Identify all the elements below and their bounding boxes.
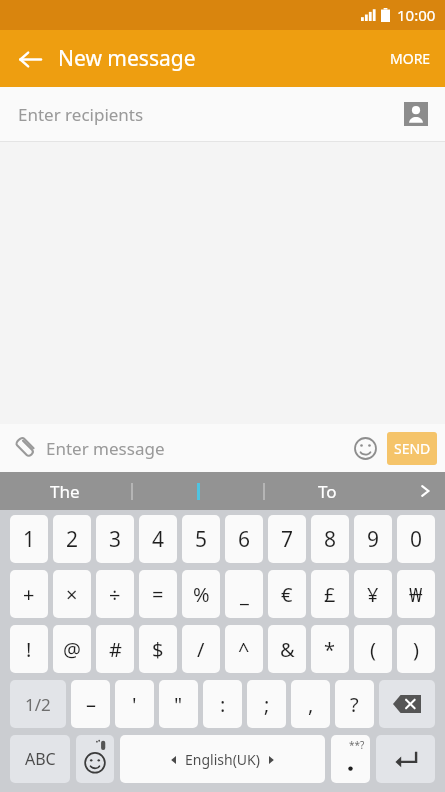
staticText: £ <box>324 581 336 608</box>
staticText: @ <box>63 636 81 663</box>
staticText: * <box>324 636 336 663</box>
button[interactable]: Add contact <box>399 97 433 131</box>
staticText: 5 <box>195 525 208 554</box>
button[interactable]: 4 <box>139 515 177 563</box>
staticText: # <box>109 636 122 663</box>
button[interactable]: ) <box>397 625 435 673</box>
button[interactable]: Backspace <box>379 680 435 728</box>
button[interactable]: , <box>291 680 330 728</box>
staticText: $ <box>152 636 164 663</box>
button[interactable]: = <box>139 570 177 618</box>
button[interactable]: × <box>53 570 91 618</box>
staticText: English(UK) <box>185 750 260 769</box>
button[interactable]: _ <box>225 570 263 618</box>
button[interactable]: $ <box>139 625 177 673</box>
button[interactable]: ÷ <box>96 570 134 618</box>
staticText: ÷ <box>109 581 121 608</box>
staticText: ( <box>370 636 376 663</box>
staticText: € <box>281 581 293 608</box>
staticText: + <box>23 581 35 608</box>
staticText: ) <box>413 636 419 663</box>
button[interactable]: Enter <box>376 735 435 783</box>
button[interactable]: : <box>203 680 242 728</box>
staticText: New message <box>58 44 196 73</box>
button[interactable]: MORE <box>390 30 431 87</box>
staticText: 8 <box>324 525 337 554</box>
staticText: MORE <box>390 49 431 68</box>
button[interactable]: € <box>268 570 306 618</box>
button[interactable]: More suggestions <box>405 472 445 510</box>
button[interactable]: ' <box>115 680 154 728</box>
button[interactable]: % <box>182 570 220 618</box>
button[interactable]: * <box>311 625 349 673</box>
button[interactable]: @ <box>53 625 91 673</box>
button[interactable]: ¥ <box>354 570 392 618</box>
button[interactable]: / <box>182 625 220 673</box>
staticText: " <box>174 691 183 718</box>
staticText: 1 <box>23 525 36 554</box>
button[interactable]: " <box>159 680 198 728</box>
staticText: Enter message <box>46 437 165 460</box>
staticText: ABC <box>25 748 56 770</box>
staticText: % <box>193 581 210 608</box>
staticText: = <box>152 581 164 608</box>
staticText: & <box>280 636 295 663</box>
button[interactable]: 9 <box>354 515 392 563</box>
button[interactable]: ! <box>10 625 48 673</box>
staticText: ! <box>26 636 32 663</box>
staticText: 7 <box>281 525 294 554</box>
button[interactable]: £ <box>311 570 349 618</box>
button[interactable]: Space, English UK <box>120 735 325 783</box>
staticText: 2 <box>66 525 79 554</box>
staticText: 1/2 <box>25 693 51 716</box>
staticText: ^ <box>238 636 250 663</box>
button[interactable]: 0 <box>397 515 435 563</box>
button[interactable]: 2 <box>53 515 91 563</box>
button[interactable]: – <box>71 680 110 728</box>
button[interactable]: Attach <box>6 429 44 467</box>
button[interactable]: + <box>10 570 48 618</box>
staticText: ' <box>132 691 137 718</box>
button[interactable]: ; <box>247 680 286 728</box>
staticText: , <box>308 691 314 718</box>
staticText: _ <box>240 581 249 608</box>
button[interactable]: To <box>318 480 337 503</box>
button[interactable]: Period <box>331 735 370 783</box>
staticText: × <box>66 581 78 608</box>
staticText: 4 <box>152 525 165 554</box>
button[interactable]: ? <box>335 680 374 728</box>
button[interactable]: & <box>268 625 306 673</box>
button[interactable]: # <box>96 625 134 673</box>
staticText: 6 <box>238 525 251 554</box>
staticText: 3 <box>109 525 122 554</box>
button[interactable]: 1 <box>10 515 48 563</box>
button[interactable]: ^ <box>225 625 263 673</box>
button[interactable]: ( <box>354 625 392 673</box>
button[interactable]: 1/2 <box>10 680 66 728</box>
staticText: ; <box>264 691 270 718</box>
button[interactable]: ABC <box>10 735 70 783</box>
button[interactable]: 6 <box>225 515 263 563</box>
button[interactable]: 7 <box>268 515 306 563</box>
staticText: ₩ <box>409 581 423 608</box>
staticText: / <box>197 636 205 663</box>
staticText: 0 <box>410 525 423 554</box>
staticText: SEND <box>394 439 431 458</box>
staticText: 10:00 <box>397 5 436 25</box>
staticText: **? <box>349 738 365 752</box>
staticText: : <box>220 691 226 718</box>
button[interactable]: 5 <box>182 515 220 563</box>
button[interactable]: Emoji <box>347 430 383 466</box>
staticText: ¥ <box>367 581 379 608</box>
staticText: – <box>86 691 96 718</box>
button[interactable]: 8 <box>311 515 349 563</box>
button[interactable]: Enter recipients <box>0 87 445 141</box>
staticText: 9 <box>367 525 380 554</box>
button[interactable]: SEND <box>387 432 437 465</box>
button[interactable]: The <box>50 480 80 503</box>
button[interactable]: 3 <box>96 515 134 563</box>
staticText: ? <box>350 691 359 718</box>
button[interactable]: Back <box>8 37 52 81</box>
button[interactable]: Emoji / voice input <box>76 735 114 783</box>
button[interactable]: ₩ <box>397 570 435 618</box>
